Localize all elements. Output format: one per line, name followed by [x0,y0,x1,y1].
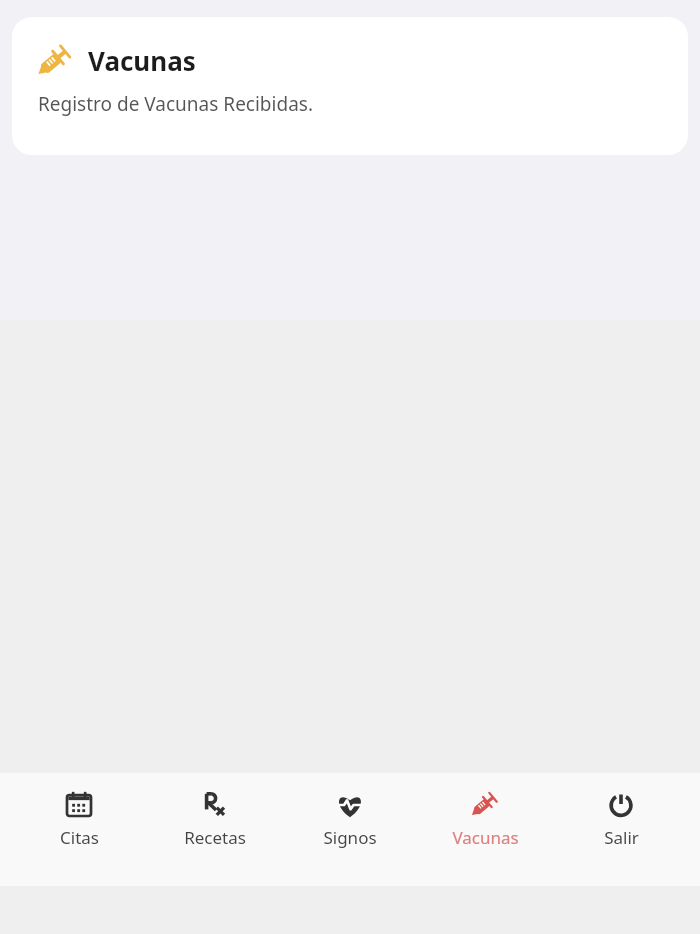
staticText: Vacunas [88,43,196,78]
staticText: Signos [323,826,377,849]
button[interactable]: Citas [23,783,135,849]
staticText: Citas [60,826,99,849]
button[interactable]: Vacunas [12,17,688,155]
button[interactable]: Recetas [159,783,271,849]
staticText: Vacunas [452,826,519,849]
button[interactable]: Vacunas [429,783,541,849]
staticText: Recetas [184,826,246,849]
staticText: Registro de Vacunas Recibidas. [38,91,313,117]
button[interactable]: Salir [565,783,677,849]
staticText: Salir [604,826,639,849]
button[interactable]: Signos [294,783,406,849]
